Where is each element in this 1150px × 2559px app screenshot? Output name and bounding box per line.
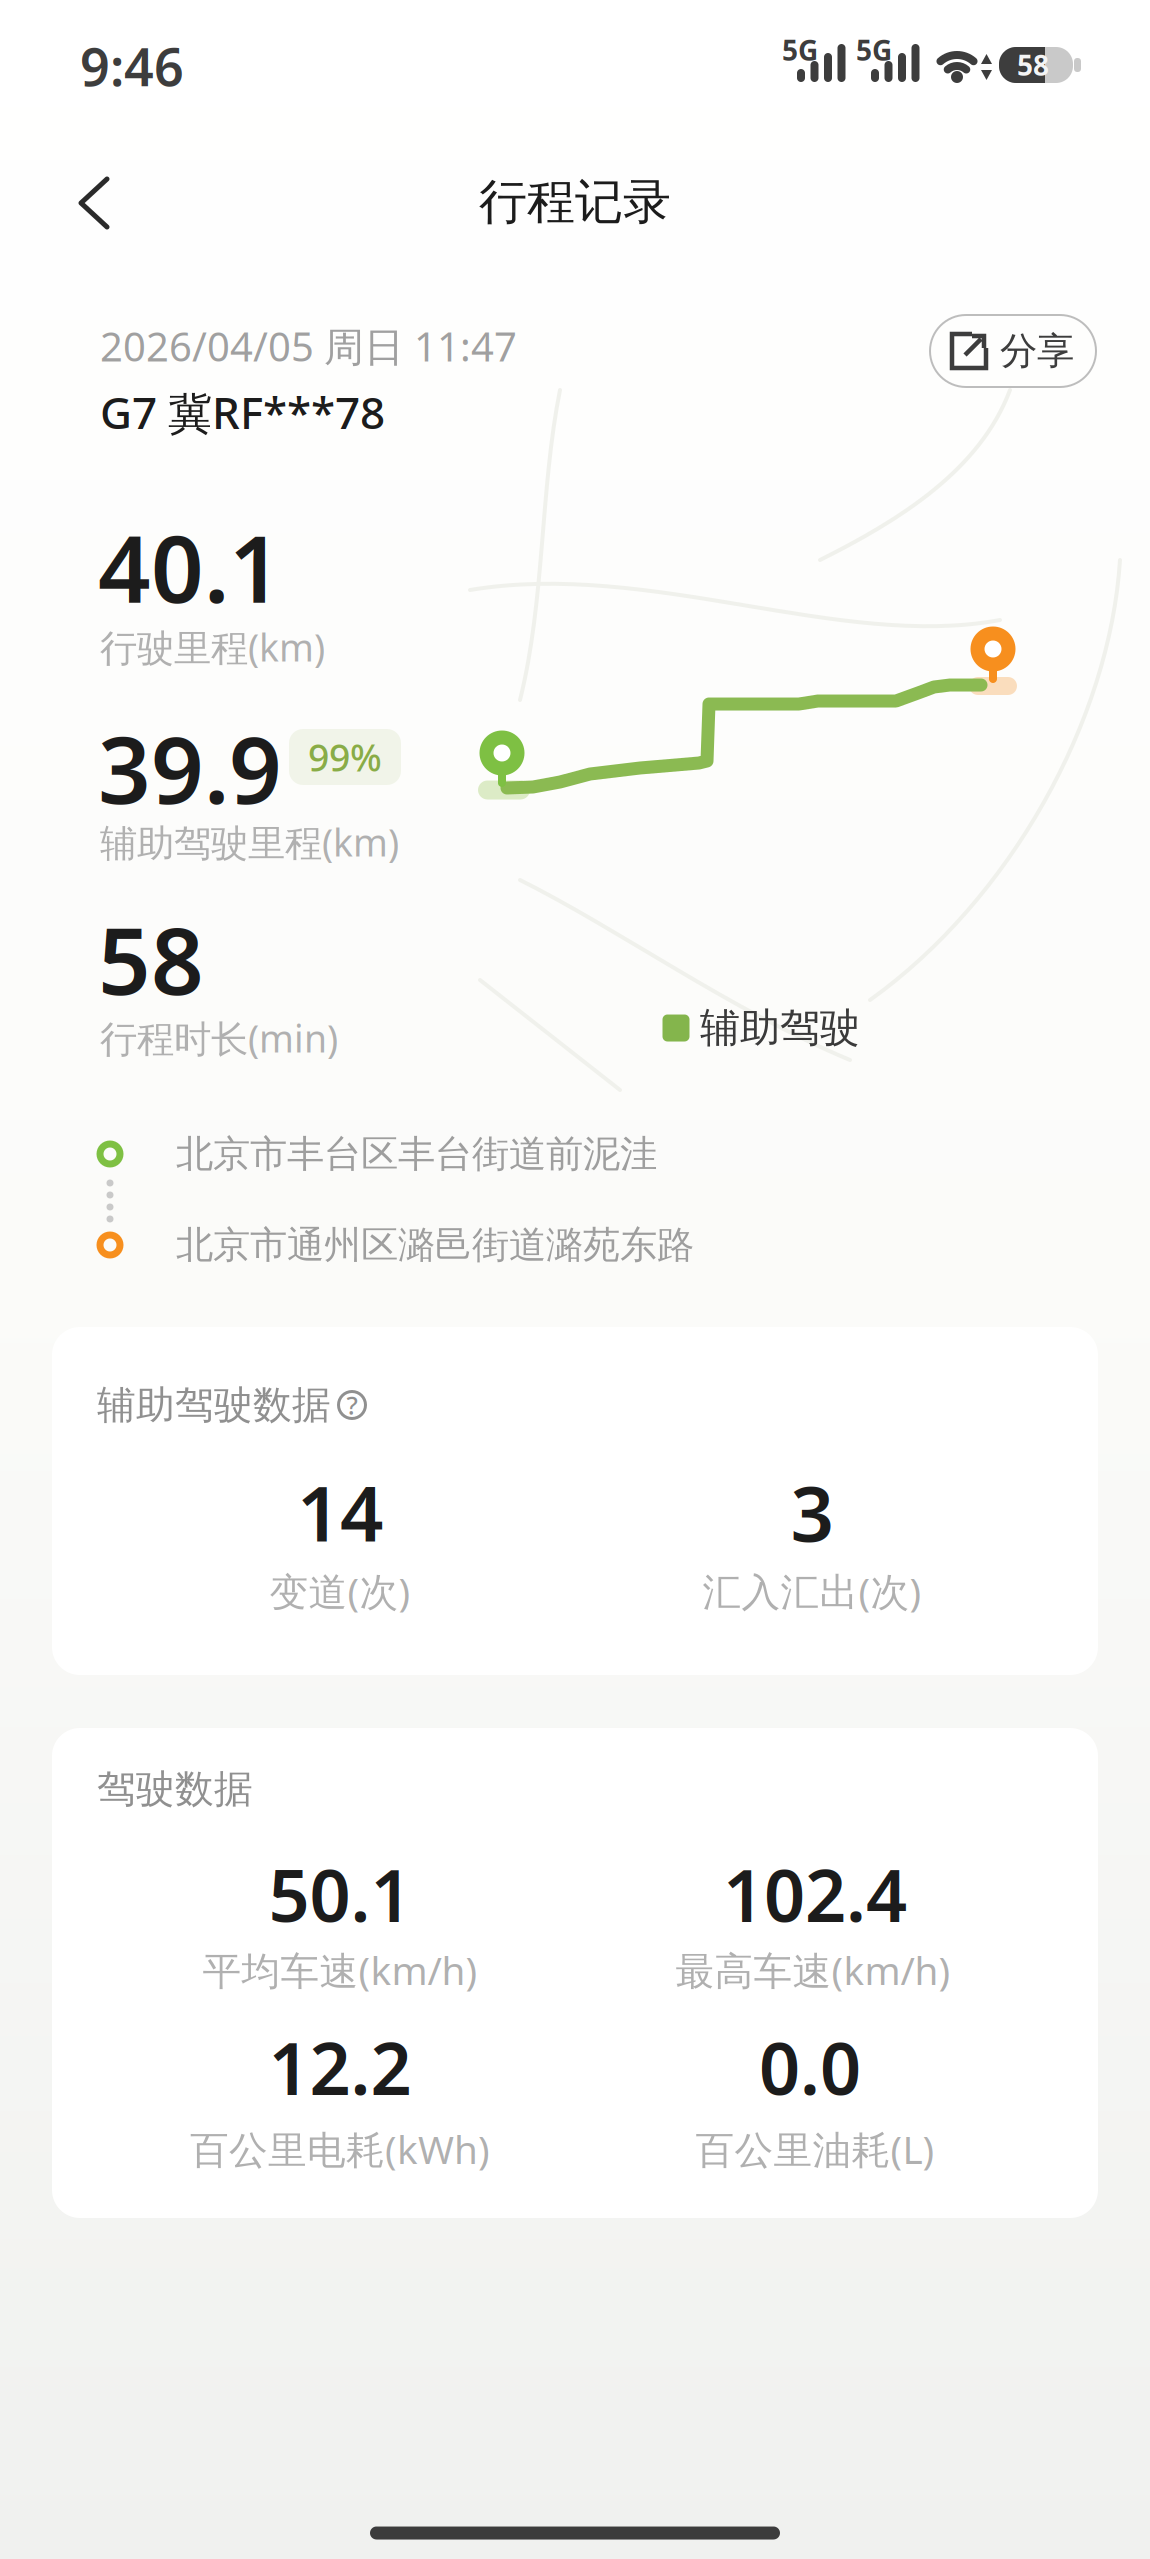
staticText: 辅助驾驶 [700,1003,860,1052]
staticText: 平均车速(km/h) [202,1944,477,1996]
staticText: 汇入汇出(次) [702,1565,921,1617]
staticText: 9:46 [80,31,184,101]
button[interactable]: ? [332,1385,372,1425]
staticText: 百公里油耗(L) [695,2123,934,2175]
staticText: 辅助驾驶里程(km) [100,817,399,867]
staticText: 50.1 [268,1846,411,1942]
staticText: ? [346,1388,357,1422]
staticText: 2026/04/05 周日 11:47 [100,319,517,372]
staticText: 12.2 [268,2019,411,2115]
button[interactable] [49,158,139,248]
staticText: 58 [1017,46,1049,84]
staticText: 分享 [1000,328,1074,374]
staticText: 最高车速(km/h) [675,1944,950,1996]
staticText: 5G [782,31,818,69]
staticText: 行程记录 [479,172,671,231]
button[interactable]: 分享 [929,314,1097,388]
staticText: 变道(次) [269,1565,410,1617]
staticText: 辅助驾驶数据 [97,1381,331,1429]
staticText: 99% [308,732,382,782]
staticText: 百公里电耗(kWh) [190,2123,490,2175]
staticText: 14 [297,1461,383,1562]
staticText: 58 [98,898,204,1020]
staticText: 0.0 [759,2019,861,2115]
staticText: 5G [856,31,892,69]
staticText: 行程时长(min) [100,1013,338,1063]
staticText: 驾驶数据 [97,1765,253,1813]
staticText: G7 冀RF***78 [100,383,385,441]
staticText: 行驶里程(km) [100,622,325,672]
staticText: 北京市通州区潞邑街道潞苑东路 [176,1222,694,1268]
staticText: 3 [790,1461,833,1562]
staticText: 39.9 [98,707,282,829]
staticText: 北京市丰台区丰台街道前泥洼 [176,1131,657,1177]
staticText: 40.1 [98,506,282,628]
staticText: 102.4 [723,1846,907,1942]
